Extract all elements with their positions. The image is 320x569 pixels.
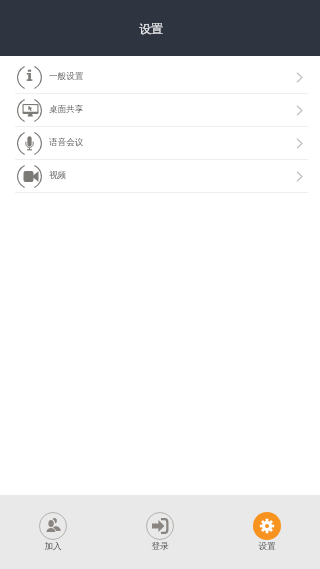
staticText: 视频 bbox=[49, 170, 67, 181]
button[interactable]: 视频 bbox=[0, 160, 320, 192]
button[interactable]: 语音会议 bbox=[0, 127, 320, 159]
staticText: 一般设置 bbox=[49, 71, 84, 82]
button[interactable]: 加入 bbox=[0, 495, 106, 552]
staticText: 设置 bbox=[139, 21, 163, 36]
button[interactable]: 一般设置 bbox=[0, 61, 320, 93]
button[interactable]: 登录 bbox=[106, 495, 213, 552]
staticText: 语音会议 bbox=[49, 137, 84, 148]
staticText: 桌面共享 bbox=[49, 104, 84, 115]
staticText: 设置 bbox=[258, 541, 276, 552]
staticText: 加入 bbox=[44, 541, 62, 552]
button[interactable]: 桌面共享 bbox=[0, 94, 320, 126]
staticText: 登录 bbox=[151, 541, 169, 552]
button[interactable]: 设置 bbox=[213, 495, 320, 552]
